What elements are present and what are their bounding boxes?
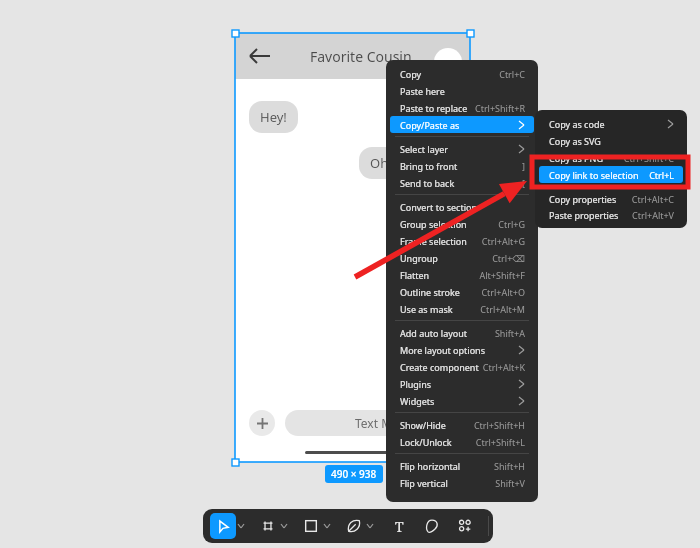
- staticText: Ctrl+Shift+H: [473, 419, 525, 431]
- button[interactable]: Use as mask: [390, 300, 534, 317]
- button[interactable]: Add auto layout: [390, 324, 534, 341]
- staticText: Alt+Shift+F: [479, 269, 525, 281]
- staticText: More layout options: [400, 344, 485, 356]
- button[interactable]: Copy as PNG: [539, 149, 683, 166]
- staticText: Flip vertical: [400, 477, 448, 489]
- button[interactable]: Send to back: [390, 174, 534, 191]
- button[interactable]: Comment tool: [421, 515, 443, 537]
- button[interactable]: Text tool: [388, 515, 410, 537]
- staticText: Ctrl+G: [498, 218, 525, 230]
- button[interactable]: Frame tool: [257, 515, 279, 537]
- staticText: [: [522, 177, 525, 189]
- staticText: Copy link to selection: [549, 169, 639, 181]
- button[interactable]: Plugins: [390, 375, 534, 392]
- staticText: Oh my Goodness! I can't: [370, 154, 519, 172]
- button[interactable]: Flatten: [390, 266, 534, 283]
- button[interactable]: More options: [365, 517, 375, 535]
- staticText: Widgets: [400, 395, 435, 407]
- staticText: Copy/Paste as: [400, 119, 460, 131]
- staticText: Lock/Unlock: [400, 436, 452, 448]
- staticText: Copy properties: [549, 193, 617, 205]
- staticText: Copy as SVG: [549, 135, 601, 147]
- staticText: T: [395, 517, 404, 536]
- staticText: Paste to replace: [400, 102, 468, 114]
- staticText: 490 × 938: [331, 467, 377, 481]
- staticText: Paste here: [400, 85, 445, 97]
- button[interactable]: Copy/Paste as: [390, 116, 534, 133]
- staticText: Ctrl+Alt+C: [631, 193, 674, 205]
- button[interactable]: Widgets: [390, 392, 534, 409]
- button[interactable]: Frame selection: [390, 232, 534, 249]
- staticText: Ctrl+⌫: [492, 252, 525, 264]
- staticText: Group selection: [400, 218, 467, 230]
- button[interactable]: Bring to front: [390, 157, 534, 174]
- button[interactable]: Pen tool: [343, 515, 365, 537]
- staticText: Ctrl+Alt+O: [481, 286, 525, 298]
- staticText: Hey!: [260, 108, 287, 126]
- button[interactable]: Ungroup: [390, 249, 534, 266]
- staticText: Select layer: [400, 143, 449, 155]
- button[interactable]: Flip horizontal: [390, 457, 534, 474]
- button[interactable]: More options: [279, 517, 289, 535]
- staticText: Ctrl+C: [499, 68, 525, 80]
- button[interactable]: Group selection: [390, 215, 534, 232]
- staticText: Flip horizontal: [400, 460, 461, 472]
- staticText: Outline stroke: [400, 286, 460, 298]
- staticText: Ctrl+Shift+R: [474, 102, 525, 114]
- staticText: Ctrl+Alt+K: [482, 361, 525, 373]
- button[interactable]: Components: [454, 515, 476, 537]
- button[interactable]: More options: [236, 517, 246, 535]
- button[interactable]: Outline stroke: [390, 283, 534, 300]
- button[interactable]: Back: [247, 46, 273, 66]
- staticText: Copy: [400, 68, 422, 80]
- staticText: Ctrl+Alt+G: [481, 235, 525, 247]
- button[interactable]: Copy as code: [539, 115, 683, 132]
- button[interactable]: Show/Hide: [390, 416, 534, 433]
- staticText: Frame selection: [400, 235, 467, 247]
- staticText: Favorite Cousin: [310, 47, 412, 66]
- staticText: Copy as PNG: [549, 152, 603, 164]
- button[interactable]: Move tool: [210, 513, 236, 539]
- button[interactable]: More options: [322, 517, 332, 535]
- button[interactable]: More layout options: [390, 341, 534, 358]
- button[interactable]: Copy link to selection: [539, 166, 683, 183]
- staticText: Send to back: [400, 177, 455, 189]
- staticText: Bring to front: [400, 160, 458, 172]
- button[interactable]: Add attachment: [249, 410, 275, 436]
- staticText: Use as mask: [400, 303, 453, 315]
- staticText: Paste properties: [549, 209, 619, 221]
- staticText: Flatten: [400, 269, 430, 281]
- staticText: Add auto layout: [400, 327, 468, 339]
- staticText: Shift+H: [494, 460, 525, 472]
- button[interactable]: Copy as SVG: [539, 132, 683, 149]
- staticText: Ctrl+L: [649, 169, 674, 181]
- button[interactable]: Shape tool: [300, 515, 322, 537]
- staticText: Ungroup: [400, 252, 438, 264]
- button[interactable]: Select layer: [390, 140, 534, 157]
- button[interactable]: Text Message: [285, 410, 470, 436]
- button[interactable]: Paste here: [390, 82, 534, 99]
- button[interactable]: Lock/Unlock: [390, 433, 534, 450]
- staticText: Ctrl+Alt+V: [632, 209, 674, 221]
- staticText: Plugins: [400, 378, 432, 390]
- staticText: Shift+V: [495, 477, 525, 489]
- staticText: ]: [522, 160, 525, 172]
- button[interactable]: Convert to section: [390, 198, 534, 215]
- staticText: Shift+A: [494, 327, 525, 339]
- staticText: Create component: [400, 361, 479, 373]
- staticText: Text Message: [355, 415, 432, 431]
- staticText: Ctrl+Shift+C: [623, 152, 674, 164]
- staticText: Ctrl+Alt+M: [480, 303, 525, 315]
- button[interactable]: Paste properties: [539, 207, 683, 223]
- staticText: Copy as code: [549, 118, 605, 130]
- staticText: Convert to section: [400, 201, 477, 213]
- button[interactable]: Create component: [390, 358, 534, 375]
- staticText: Show/Hide: [400, 419, 446, 431]
- button[interactable]: Copy properties: [539, 190, 683, 207]
- button[interactable]: Paste to replace: [390, 99, 534, 116]
- staticText: Ctrl+Shift+L: [475, 436, 525, 448]
- button[interactable]: Copy: [390, 65, 534, 82]
- button[interactable]: Flip vertical: [390, 474, 534, 491]
